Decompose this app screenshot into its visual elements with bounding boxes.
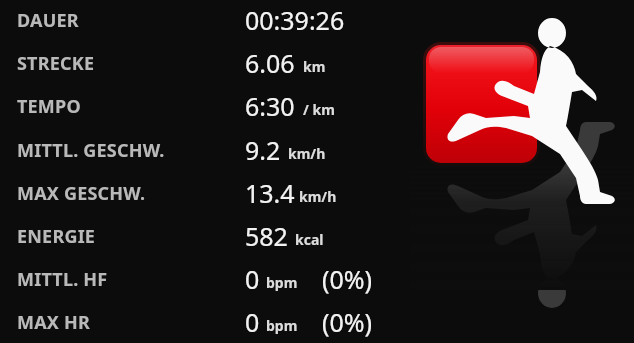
staticText: bpm <box>266 273 298 292</box>
staticText: DAUER <box>17 8 79 33</box>
button[interactable]: Running activity <box>410 0 634 290</box>
staticText: (0%) <box>322 305 373 339</box>
staticText: 0 <box>245 262 260 296</box>
button[interactable]: MAX GESCHW. <box>0 172 634 212</box>
button[interactable]: TEMPO <box>0 85 634 125</box>
staticText: 00:39:26 <box>245 3 345 37</box>
staticText: 0 <box>245 305 260 339</box>
staticText: 13.4 <box>245 176 295 210</box>
staticText: 6.06 <box>245 46 295 80</box>
staticText: STRECKE <box>17 51 95 76</box>
staticText: (0%) <box>322 262 373 296</box>
staticText: / km <box>303 100 335 119</box>
staticText: TEMPO <box>17 94 81 119</box>
button[interactable]: STRECKE <box>0 42 634 82</box>
staticText: MITTL. HF <box>17 267 108 292</box>
staticText: km <box>303 57 326 76</box>
staticText: bpm <box>266 316 298 335</box>
button[interactable]: DAUER <box>0 0 634 39</box>
staticText: MAX HR <box>17 310 90 335</box>
staticText: MITTL. GESCHW. <box>17 138 165 163</box>
staticText: ENERGIE <box>17 224 96 249</box>
button[interactable]: MITTL. HF <box>0 258 634 298</box>
staticText: MAX GESCHW. <box>17 181 146 206</box>
staticText: km/h <box>299 187 337 206</box>
button[interactable]: MITTL. GESCHW. <box>0 129 634 169</box>
staticText: 6:30 <box>245 89 295 123</box>
staticText: 582 <box>245 219 288 253</box>
staticText: km/h <box>288 144 326 163</box>
button[interactable]: ENERGIE <box>0 215 634 255</box>
staticText: 9.2 <box>245 133 281 167</box>
staticText: kcal <box>295 230 324 249</box>
button[interactable]: MAX HR <box>0 301 634 341</box>
